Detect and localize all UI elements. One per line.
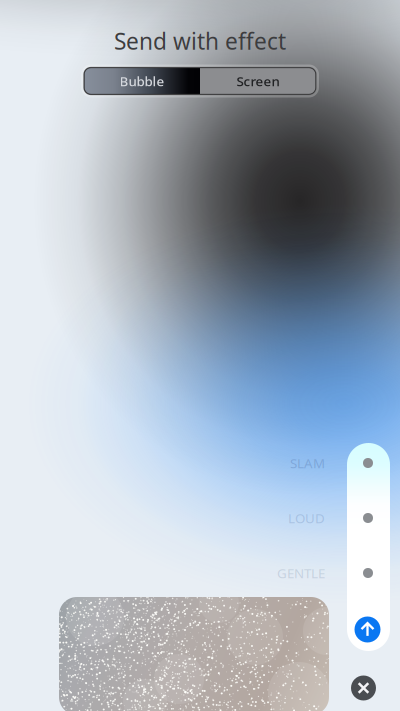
button[interactable]: Effect option xyxy=(353,503,383,533)
button[interactable]: Send xyxy=(350,612,384,646)
staticText: Bubble xyxy=(119,72,164,90)
staticText: GENTLE xyxy=(277,564,325,582)
button[interactable]: Screen xyxy=(200,67,316,95)
button[interactable]: Bubble xyxy=(84,67,200,95)
staticText: Send with effect xyxy=(114,26,286,56)
button[interactable]: Close xyxy=(343,668,383,708)
button[interactable]: Effect option xyxy=(353,558,383,588)
staticText: Screen xyxy=(236,72,279,90)
staticText: LOUD xyxy=(288,509,325,527)
button[interactable]: Effect option xyxy=(353,448,383,478)
staticText: SLAM xyxy=(290,454,325,472)
